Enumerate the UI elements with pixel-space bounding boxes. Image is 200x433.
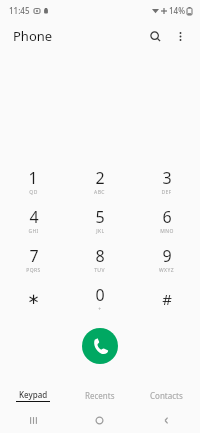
staticText: 1 [28,167,38,189]
button[interactable]: 3 [133,162,200,201]
staticText: TUV [94,267,105,274]
button[interactable]: Search [144,25,166,47]
button[interactable]: Home [66,408,133,433]
button[interactable]: Recent apps [0,408,66,433]
staticText: 11:45 [9,5,30,16]
staticText: 9 [162,245,172,267]
staticText: QD [29,189,38,196]
staticText: Recents [85,390,115,401]
staticText: 0 [95,284,105,306]
button[interactable]: More options [169,25,191,47]
button[interactable]: Call [82,328,118,364]
staticText: 6 [162,206,172,228]
staticText: ∗ [27,290,40,307]
staticText: 5 [95,206,105,228]
staticText: JKL [96,228,105,235]
staticText: 8 [95,245,105,267]
staticText: DEF [161,189,172,196]
staticText: Contacts [150,390,183,401]
button[interactable]: 1 [0,162,66,201]
button[interactable]: Back [133,408,200,433]
staticText: + [98,306,102,313]
button[interactable]: 7 [0,240,66,279]
staticText: 3 [162,167,172,189]
staticText: PQRS [26,267,41,274]
button[interactable]: 2 [66,162,133,201]
staticText: Keypad [19,389,48,400]
button[interactable]: ∗ [0,279,66,318]
button[interactable]: 4 [0,201,66,240]
button[interactable]: 8 [66,240,133,279]
button[interactable]: 5 [66,201,133,240]
button[interactable]: 0 [66,279,133,318]
button[interactable]: Keypad [0,382,66,408]
staticText: 4 [29,206,39,228]
staticText: 7 [29,245,39,267]
staticText: # [162,289,172,309]
button[interactable]: Recents [66,382,133,408]
button[interactable]: Contacts [133,382,200,408]
staticText: MNO [160,228,174,235]
staticText: 2 [95,167,105,189]
staticText: Phone [13,27,53,45]
button[interactable]: 9 [133,240,200,279]
staticText: WXYZ [159,267,174,274]
button[interactable]: 6 [133,201,200,240]
button[interactable]: # [133,279,200,318]
staticText: 14% [169,5,185,16]
staticText: GHI [28,228,39,235]
staticText: ABC [94,189,105,196]
